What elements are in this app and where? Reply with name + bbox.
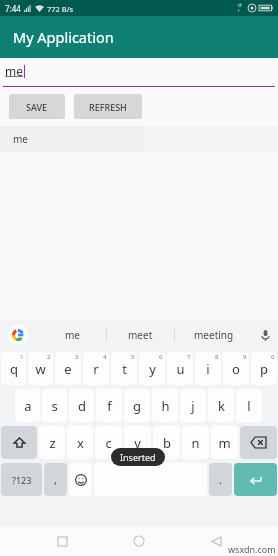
staticText: f (107, 397, 112, 415)
button[interactable]: me (38, 320, 106, 350)
staticText: 4 (103, 353, 107, 361)
staticText: b (163, 434, 171, 452)
button[interactable]: Space (94, 463, 207, 496)
button[interactable]: o (223, 352, 249, 385)
button[interactable]: a (15, 389, 40, 422)
staticText: 5 (131, 353, 135, 361)
staticText: 0 (271, 353, 275, 361)
staticText: My Application (13, 27, 114, 47)
staticText: 772 B/s (47, 4, 74, 14)
staticText: t (122, 360, 127, 378)
staticText: 3 (75, 353, 79, 361)
button[interactable]: k (208, 389, 234, 422)
staticText: u (176, 360, 185, 378)
staticText: me (65, 328, 80, 342)
button[interactable]: meet (107, 320, 174, 350)
button[interactable]: b (153, 426, 180, 459)
button[interactable]: Enter (234, 463, 277, 496)
staticText: wsxdn.com (228, 543, 276, 555)
button[interactable]: Shift (1, 426, 37, 459)
button[interactable]: me (0, 126, 145, 152)
button[interactable]: . (209, 463, 232, 496)
staticText: e (64, 360, 72, 378)
button[interactable]: q (1, 352, 26, 385)
button[interactable]: Emoji (69, 463, 92, 496)
staticText: meeting (194, 328, 234, 342)
staticText: q (10, 360, 18, 378)
button[interactable]: j (180, 389, 206, 422)
button[interactable]: , (44, 463, 67, 496)
staticText: h (161, 397, 170, 415)
button[interactable]: m (211, 426, 238, 459)
button[interactable]: h (152, 389, 178, 422)
staticText: j (191, 397, 195, 415)
button[interactable]: REFRESH (74, 94, 142, 119)
button[interactable]: r (83, 352, 109, 385)
staticText: me (5, 63, 23, 79)
button[interactable]: l (236, 389, 262, 422)
staticText: meet (128, 328, 153, 342)
button[interactable]: z (39, 426, 65, 459)
staticText: ?123 (12, 474, 32, 486)
staticText: . (219, 472, 222, 487)
staticText: v (134, 434, 141, 452)
staticText: 7:44 (5, 3, 21, 14)
staticText: x (77, 434, 84, 452)
staticText: 9 (243, 353, 247, 361)
staticText: z (49, 434, 56, 452)
button[interactable]: Back (201, 526, 231, 556)
button[interactable]: f (96, 389, 122, 422)
button[interactable]: s (42, 389, 67, 422)
staticText: m (218, 434, 231, 452)
staticText: SAVE (26, 101, 48, 113)
staticText: p (260, 360, 268, 378)
button[interactable]: Recents (47, 526, 77, 556)
staticText: 8 (215, 353, 219, 361)
staticText: a (24, 397, 32, 415)
button[interactable]: ?123 (1, 463, 42, 496)
staticText: n (191, 434, 200, 452)
staticText: g (133, 397, 141, 415)
staticText: l (247, 397, 251, 415)
button[interactable]: d (69, 389, 94, 422)
staticText: 7 (187, 353, 191, 361)
button[interactable]: SAVE (9, 94, 65, 119)
staticText: c (105, 434, 112, 452)
button[interactable]: p (251, 352, 277, 385)
button[interactable]: t (111, 352, 137, 385)
button[interactable]: g (124, 389, 150, 422)
staticText: y (149, 360, 156, 378)
staticText: s (51, 397, 58, 415)
button[interactable]: Backspace (240, 426, 277, 459)
staticText: o (232, 360, 240, 378)
button[interactable]: n (182, 426, 209, 459)
staticText: REFRESH (89, 101, 127, 113)
button[interactable]: y (139, 352, 165, 385)
button[interactable]: Voice input (252, 320, 278, 350)
button[interactable]: Home (124, 526, 154, 556)
staticText: 6 (159, 353, 163, 361)
staticText: d (78, 397, 86, 415)
staticText: 2 (47, 353, 51, 361)
staticText: i (206, 360, 210, 378)
button[interactable]: w (28, 352, 53, 385)
staticText: 1 (20, 353, 24, 361)
staticText: k (218, 397, 225, 415)
button[interactable]: v (124, 426, 151, 459)
button[interactable]: u (167, 352, 193, 385)
staticText: , (54, 472, 57, 487)
staticText: Inserted (120, 451, 156, 463)
staticText: r (93, 360, 99, 378)
button[interactable]: c (95, 426, 122, 459)
button[interactable]: Google (8, 325, 28, 345)
button[interactable]: meeting (175, 320, 252, 350)
button[interactable]: i (195, 352, 221, 385)
button[interactable]: e (55, 352, 81, 385)
staticText: me (13, 132, 28, 146)
button[interactable]: x (67, 426, 93, 459)
staticText: w (35, 360, 46, 378)
